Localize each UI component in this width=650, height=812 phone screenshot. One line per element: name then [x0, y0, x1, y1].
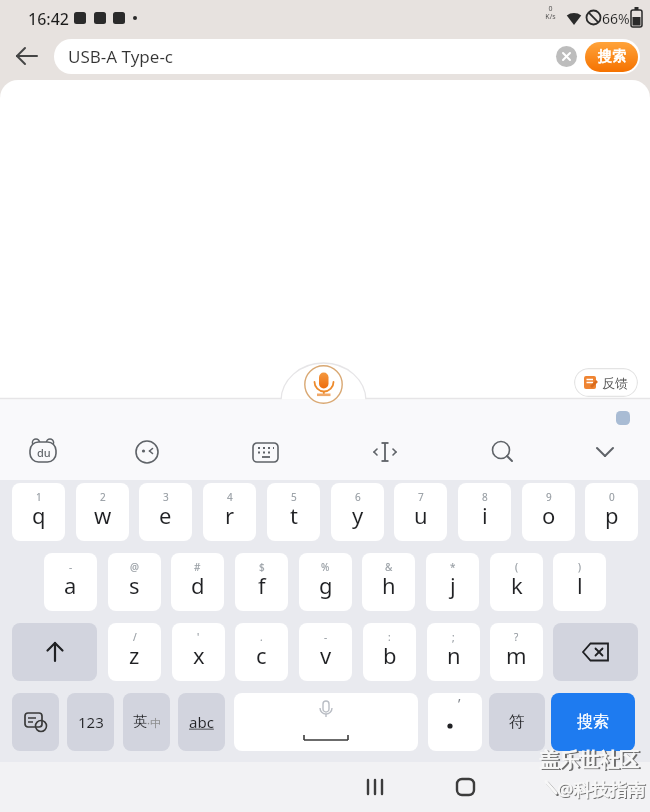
button[interactable]: 2: [76, 483, 129, 541]
button[interactable]: 6: [331, 483, 384, 541]
staticText: 16:42: [28, 8, 69, 30]
button[interactable]: [356, 772, 394, 802]
staticText: p: [605, 500, 619, 530]
button[interactable]: -: [44, 553, 97, 611]
staticText: @科技指南: [557, 777, 646, 802]
button[interactable]: [234, 693, 418, 751]
button[interactable]: 5: [267, 483, 320, 541]
button[interactable]: [556, 46, 577, 67]
staticText: 搜索: [577, 712, 609, 732]
staticText: abc: [189, 712, 214, 732]
staticText: s: [129, 570, 140, 600]
button[interactable]: ': [172, 623, 225, 681]
staticText: ': [197, 630, 200, 644]
staticText: t: [290, 500, 298, 530]
button[interactable]: abc: [178, 693, 225, 751]
button[interactable]: *: [426, 553, 479, 611]
staticText: ’: [458, 694, 461, 713]
staticText: .: [260, 630, 263, 644]
staticText: w: [94, 500, 112, 530]
staticText: o: [542, 500, 556, 530]
staticText: z: [129, 640, 140, 670]
staticText: %: [321, 560, 330, 574]
button[interactable]: ): [553, 553, 606, 611]
staticText: -: [69, 560, 73, 574]
staticText: 1: [36, 490, 42, 504]
button[interactable]: /: [108, 623, 161, 681]
staticText: i: [482, 500, 488, 530]
button[interactable]: :: [363, 623, 416, 681]
button[interactable]: 123: [67, 693, 114, 751]
button[interactable]: 搜索: [551, 693, 635, 751]
button[interactable]: -: [299, 623, 352, 681]
staticText: g: [319, 570, 333, 600]
button[interactable]: 9: [522, 483, 575, 541]
staticText: b: [383, 640, 397, 670]
button[interactable]: @: [108, 553, 161, 611]
staticText: u: [414, 500, 428, 530]
button[interactable]: [12, 623, 97, 681]
button[interactable]: 英: [123, 693, 170, 751]
staticText: 2: [100, 490, 106, 504]
staticText: @科技指南: [558, 778, 647, 803]
staticText: r: [225, 500, 235, 530]
button[interactable]: 1: [12, 483, 65, 541]
staticText: 9: [546, 490, 552, 504]
button[interactable]: 7: [394, 483, 447, 541]
staticText: ?: [514, 630, 519, 644]
staticText: 符: [509, 712, 525, 732]
staticText: ·中: [147, 715, 161, 730]
staticText: c: [256, 640, 267, 670]
staticText: 6: [355, 490, 361, 504]
staticText: #: [194, 560, 201, 574]
button[interactable]: [553, 623, 638, 681]
staticText: ;: [452, 630, 455, 644]
button[interactable]: .: [235, 623, 288, 681]
staticText: /: [133, 630, 137, 644]
staticText: l: [577, 570, 583, 600]
staticText: 盖乐世社区: [541, 749, 641, 774]
button[interactable]: [12, 693, 59, 751]
staticText: q: [32, 500, 46, 530]
staticText: 8: [482, 490, 488, 504]
staticText: ): [578, 560, 581, 574]
staticText: a: [64, 570, 77, 600]
staticText: 反馈: [602, 375, 628, 391]
button[interactable]: %: [299, 553, 352, 611]
staticText: y: [352, 500, 364, 530]
staticText: 123: [78, 712, 104, 732]
button[interactable]: ?: [490, 623, 543, 681]
button[interactable]: 8: [458, 483, 511, 541]
staticText: m: [506, 640, 527, 670]
button[interactable]: #: [171, 553, 224, 611]
staticText: j: [450, 570, 456, 600]
staticText: k: [511, 570, 523, 600]
staticText: -: [324, 630, 328, 644]
button[interactable]: 反馈: [574, 368, 638, 397]
staticText: n: [447, 640, 461, 670]
staticText: $: [259, 560, 265, 574]
button[interactable]: [536, 772, 574, 802]
staticText: du: [37, 445, 51, 460]
staticText: USB-A Type-c: [68, 45, 174, 68]
button[interactable]: [447, 772, 485, 802]
button[interactable]: $: [235, 553, 288, 611]
button[interactable]: (: [490, 553, 543, 611]
staticText: 5: [291, 490, 297, 504]
staticText: &: [385, 560, 393, 574]
staticText: 英: [133, 713, 147, 731]
button[interactable]: [13, 42, 41, 70]
staticText: d: [191, 570, 205, 600]
button[interactable]: 搜索: [585, 42, 638, 72]
button[interactable]: USB-A Type-c: [54, 39, 640, 74]
button[interactable]: ;: [427, 623, 480, 681]
button[interactable]: 0: [585, 483, 638, 541]
staticText: x: [193, 640, 205, 670]
button[interactable]: 符: [489, 693, 545, 751]
button[interactable]: 4: [203, 483, 256, 541]
button[interactable]: [304, 365, 343, 404]
button[interactable]: ’: [428, 693, 482, 751]
staticText: h: [382, 570, 396, 600]
button[interactable]: &: [362, 553, 415, 611]
button[interactable]: 3: [139, 483, 192, 541]
